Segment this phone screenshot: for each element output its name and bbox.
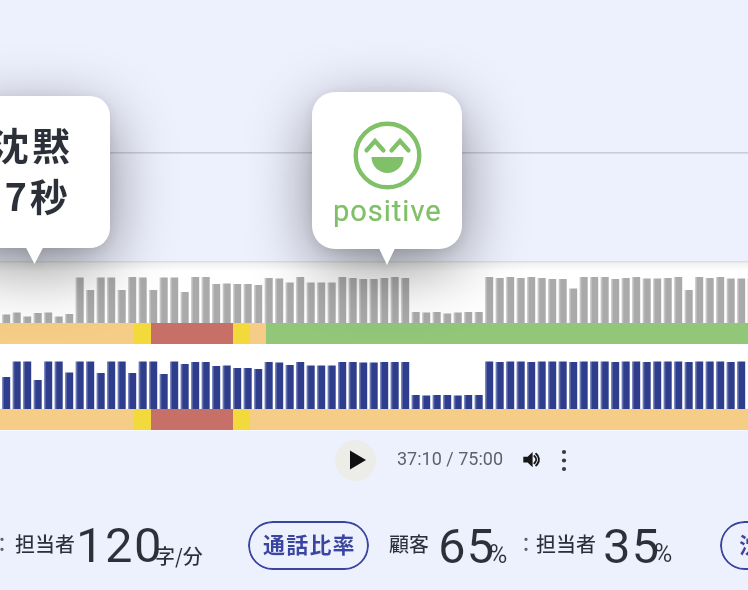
staticText: 120 [76, 517, 164, 574]
button[interactable]: Play [335, 440, 376, 481]
staticText: 37:10 / 75:00 [397, 448, 504, 469]
staticText: 65 [438, 518, 496, 575]
staticText: ： [0, 529, 12, 558]
button[interactable]: 沈黙比率 [720, 521, 748, 570]
staticText: 担当者 [15, 529, 75, 558]
staticText: 通話比率 [263, 527, 356, 559]
button[interactable]: Positive sentiment [312, 92, 462, 249]
staticText: 担当者 [536, 529, 596, 558]
staticText: 35 [603, 518, 661, 575]
staticText: positive [333, 194, 442, 228]
button[interactable]: Volume [516, 444, 548, 476]
staticText: 顧客 [389, 529, 429, 558]
staticText: % [654, 539, 673, 568]
button[interactable]: Silence 17 seconds [0, 96, 110, 248]
staticText: 17秒 [0, 167, 71, 222]
staticText: 沈黙比率 [739, 527, 748, 559]
button[interactable]: 通話比率 [248, 521, 369, 570]
staticText: 字/分 [155, 541, 203, 570]
button[interactable]: More options [552, 444, 576, 476]
staticText: 沈黙 [0, 116, 74, 171]
staticText: ： [516, 529, 536, 558]
staticText: % [489, 540, 508, 569]
